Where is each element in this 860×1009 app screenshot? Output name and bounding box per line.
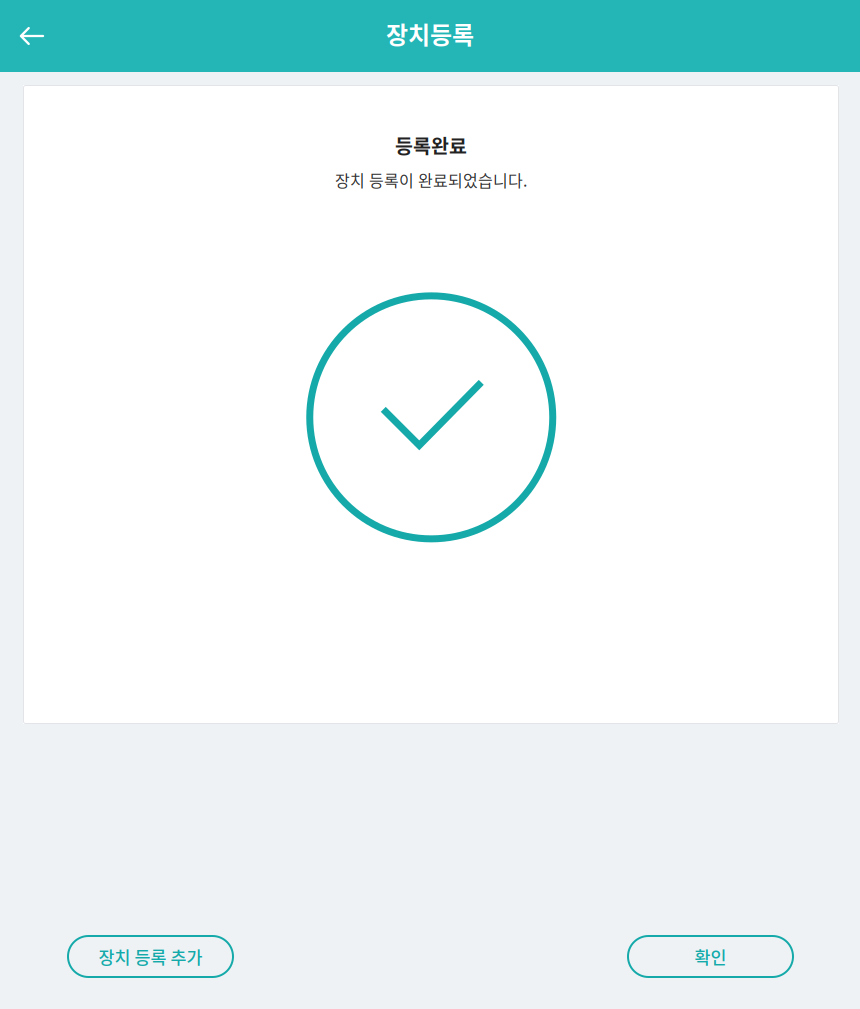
- staticText: 장치등록: [386, 16, 474, 51]
- staticText: 확인: [694, 944, 726, 969]
- staticText: 등록완료: [395, 131, 467, 159]
- staticText: 장치 등록 추가: [98, 944, 202, 969]
- staticText: 장치 등록이 완료되었습니다.: [335, 168, 527, 191]
- button[interactable]: 확인: [627, 935, 794, 978]
- button[interactable]: 장치 등록 추가: [67, 935, 234, 978]
- button[interactable]: Back: [0, 6, 64, 66]
